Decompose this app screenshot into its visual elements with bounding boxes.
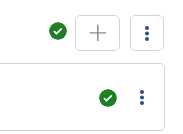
button[interactable]: More options	[134, 83, 150, 111]
button[interactable]: Add	[75, 15, 120, 51]
button[interactable]: Completed	[99, 89, 117, 107]
button[interactable]: More options	[130, 15, 164, 51]
button[interactable]: Completed	[49, 22, 67, 40]
